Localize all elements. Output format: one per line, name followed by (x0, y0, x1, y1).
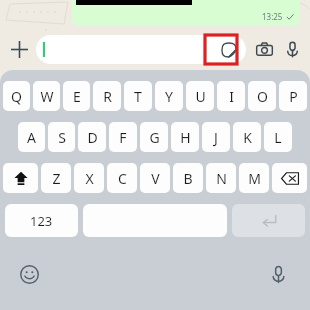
button[interactable]: K (233, 122, 261, 152)
staticText: L (274, 128, 282, 147)
button[interactable]: M (239, 163, 269, 193)
staticText: F (119, 128, 127, 147)
button[interactable]: T (124, 81, 152, 111)
staticText: S (58, 128, 66, 147)
button[interactable]: O (248, 81, 276, 111)
staticText: K (243, 128, 252, 147)
button[interactable]: Stickers (36, 35, 246, 64)
staticText: U (195, 87, 206, 106)
button[interactable]: Voice message (279, 36, 305, 62)
button[interactable]: Voice input (264, 260, 292, 288)
button[interactable]: Backspace (272, 163, 307, 193)
button[interactable]: F (109, 122, 137, 152)
staticText: R (103, 87, 112, 106)
button[interactable]: Space (83, 204, 227, 237)
staticText: C (118, 169, 127, 188)
staticText: V (151, 169, 160, 188)
button[interactable]: Q (3, 81, 30, 111)
staticText: X (85, 169, 94, 188)
button[interactable]: A (18, 122, 45, 152)
staticText: G (149, 128, 160, 147)
staticText: A (27, 128, 36, 147)
button[interactable]: U (186, 81, 214, 111)
button[interactable]: V (140, 163, 170, 193)
staticText: H (180, 128, 191, 147)
staticText: N (216, 169, 227, 188)
button[interactable]: E (63, 81, 90, 111)
button[interactable]: Camera (251, 36, 277, 62)
button[interactable]: X (74, 163, 104, 193)
button[interactable]: 123 (5, 204, 78, 237)
staticText: W (40, 87, 54, 106)
staticText: J (214, 128, 218, 147)
button[interactable]: D (78, 122, 106, 152)
button[interactable]: J (202, 122, 230, 152)
staticText: D (87, 128, 98, 147)
staticText: 13:25 (262, 11, 283, 22)
button[interactable]: Emoji (15, 260, 43, 288)
button[interactable]: Z (41, 163, 71, 193)
staticText: Q (11, 87, 22, 106)
staticText: 123 (30, 212, 53, 230)
staticText: B (183, 169, 193, 188)
button[interactable]: P (279, 81, 307, 111)
button[interactable]: R (93, 81, 121, 111)
button[interactable]: S (48, 122, 75, 152)
button[interactable]: L (264, 122, 292, 152)
button[interactable]: G (140, 122, 168, 152)
button[interactable]: W (33, 81, 60, 111)
staticText: Z (52, 169, 61, 188)
staticText: I (229, 87, 234, 106)
button[interactable]: I (217, 81, 245, 111)
button[interactable]: Attach (6, 36, 32, 62)
button[interactable]: N (206, 163, 236, 193)
button[interactable]: C (107, 163, 137, 193)
staticText: O (257, 87, 268, 106)
staticText: E (73, 87, 81, 106)
button[interactable]: Shift (3, 163, 38, 193)
staticText: M (248, 169, 261, 188)
staticText: T (134, 87, 142, 106)
button[interactable]: Stickers (218, 39, 240, 61)
staticText: P (289, 87, 298, 106)
button[interactable]: Y (155, 81, 183, 111)
button[interactable]: Enter (232, 204, 305, 237)
button[interactable]: H (171, 122, 199, 152)
button[interactable]: B (173, 163, 203, 193)
staticText: Y (165, 87, 173, 106)
